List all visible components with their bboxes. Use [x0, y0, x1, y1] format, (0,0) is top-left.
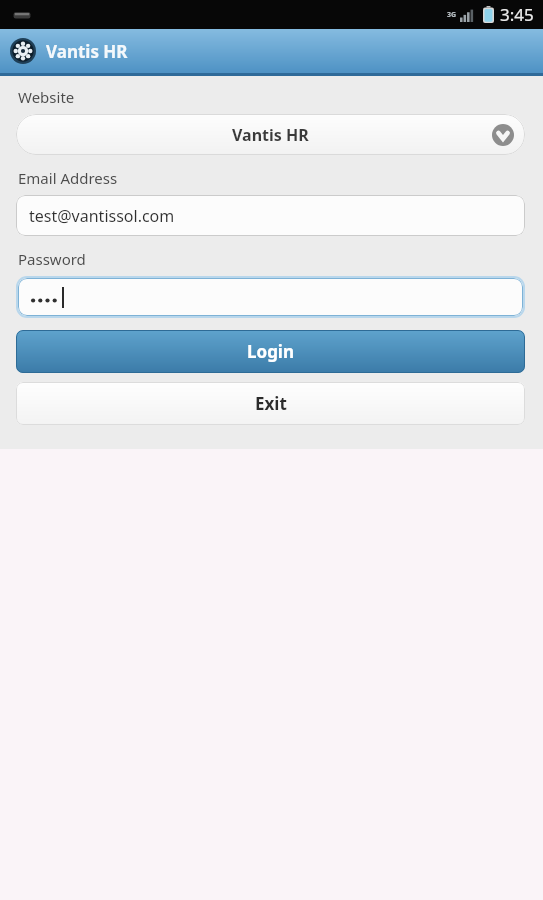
- staticText: Email Address: [18, 168, 118, 188]
- staticText: Password: [18, 249, 86, 269]
- staticText: Vantis HR: [232, 124, 309, 146]
- staticText: Website: [18, 87, 75, 107]
- staticText: Login: [247, 340, 295, 363]
- other: App icon: [10, 38, 36, 64]
- button[interactable]: Exit: [16, 382, 525, 425]
- staticText: Exit: [255, 392, 287, 415]
- button[interactable]: [18, 278, 523, 316]
- staticText: test@vantissol.com: [29, 205, 175, 227]
- button[interactable]: Login: [16, 330, 525, 373]
- staticText: 3:45: [500, 3, 534, 26]
- staticText: Vantis HR: [46, 40, 128, 63]
- button[interactable]: test@vantissol.com: [16, 195, 525, 236]
- staticText: 3G: [447, 10, 457, 20]
- button[interactable]: Vantis HR: [16, 114, 525, 155]
